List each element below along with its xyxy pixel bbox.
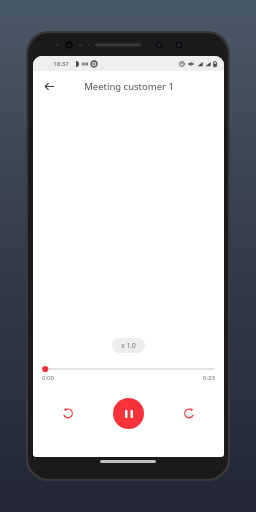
button[interactable]: Pause — [113, 398, 144, 429]
staticText: x 1.0 — [121, 341, 136, 350]
staticText: 18:37 — [53, 60, 69, 68]
button[interactable]: x 1.0 — [112, 338, 145, 353]
button[interactable] — [42, 364, 215, 374]
staticText: 0:00 — [42, 374, 54, 382]
button[interactable]: Forward 10 seconds — [176, 400, 202, 426]
button[interactable]: Rewind 10 seconds — [55, 400, 81, 426]
button[interactable]: Back — [39, 76, 59, 96]
staticText: 0:23 — [203, 374, 215, 382]
staticText: Meeting customer 1 — [84, 80, 174, 93]
